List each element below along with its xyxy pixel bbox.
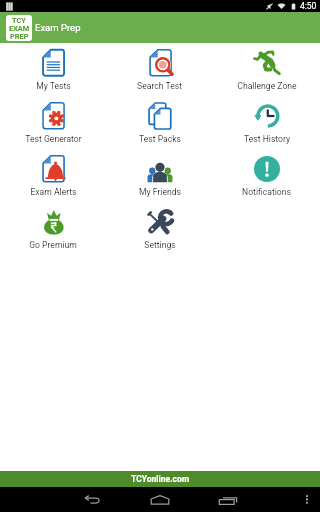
button[interactable]: My Tests: [0, 43, 106, 96]
button[interactable]: Back: [57, 487, 125, 512]
button[interactable]: More options: [294, 487, 320, 512]
button[interactable]: Test Packs: [106, 96, 213, 149]
button[interactable]: Home: [126, 487, 194, 512]
button[interactable]: Settings: [106, 202, 213, 255]
button[interactable]: Test Generator: [0, 96, 106, 149]
staticText: Test History: [244, 134, 290, 144]
staticText: Search Test: [137, 81, 182, 91]
staticText: Exam Prep: [35, 22, 81, 33]
staticText: TCY: [12, 16, 26, 24]
button[interactable]: Test History: [213, 96, 320, 149]
staticText: Go Premium: [29, 240, 77, 250]
button[interactable]: Challenge Zone: [213, 43, 320, 96]
staticText: Test Packs: [139, 134, 181, 144]
staticText: Challenge Zone: [237, 81, 297, 91]
staticText: My Friends: [139, 187, 181, 197]
button[interactable]: Notifications: [213, 149, 320, 202]
button[interactable]: My Friends: [106, 149, 213, 202]
staticText: EXAM: [9, 24, 30, 32]
staticText: Test Generator: [25, 134, 82, 144]
button[interactable]: Search Test: [106, 43, 213, 96]
staticText: Exam Alerts: [30, 187, 77, 197]
staticText: Notifications: [242, 187, 291, 197]
staticText: PREP: [10, 32, 29, 40]
staticText: 4:50: [300, 1, 317, 11]
staticText: My Tests: [36, 81, 71, 91]
button[interactable]: Exam Alerts: [0, 149, 106, 202]
button[interactable]: Recent apps: [194, 487, 262, 512]
staticText: Settings: [144, 240, 176, 250]
staticText: TCYonline.com: [131, 474, 190, 484]
button[interactable]: Go Premium: [0, 202, 106, 255]
